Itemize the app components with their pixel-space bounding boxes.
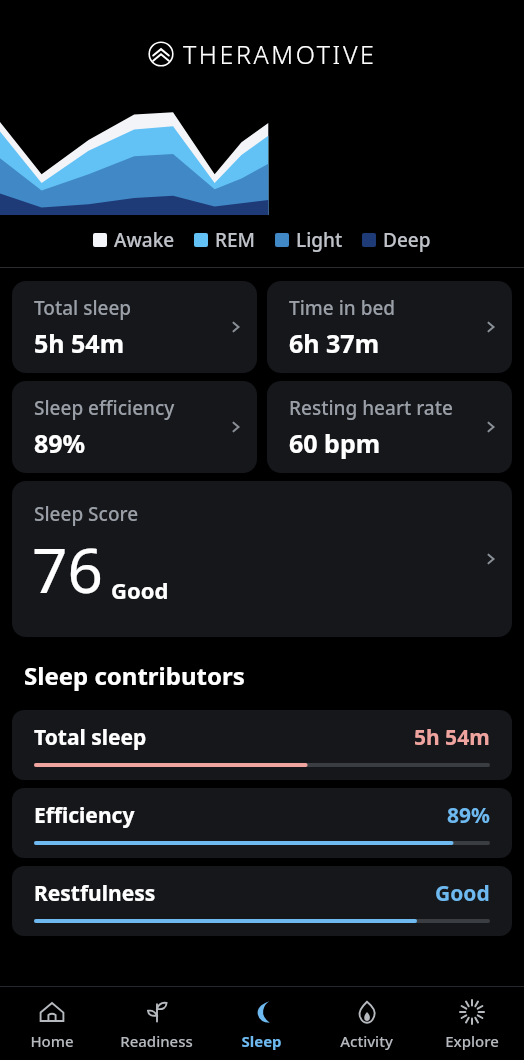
staticText: Time in bed: [289, 295, 396, 321]
staticText: Sleep contributors: [24, 659, 245, 692]
other: Activity: [352, 997, 382, 1027]
button[interactable]: Home: [0, 997, 104, 1051]
other: Explore: [457, 997, 487, 1027]
staticText: Readiness: [120, 1031, 193, 1051]
staticText: Good: [435, 879, 490, 908]
staticText: REM: [215, 227, 256, 253]
staticText: Light: [296, 227, 343, 253]
staticText: 5h 54m: [414, 723, 490, 752]
button[interactable]: Total sleep: [12, 281, 257, 373]
other: Home: [37, 997, 67, 1027]
staticText: Efficiency: [34, 801, 135, 830]
staticText: Home: [30, 1031, 74, 1051]
staticText: 89%: [447, 801, 490, 830]
staticText: 89%: [34, 426, 86, 460]
button[interactable]: Time in bed: [267, 281, 512, 373]
button[interactable]: Sleep Score: [12, 481, 512, 637]
button[interactable]: Sleep: [209, 997, 314, 1051]
staticText: Explore: [445, 1031, 499, 1051]
staticText: Sleep efficiency: [34, 395, 175, 421]
button[interactable]: Total sleep: [12, 710, 512, 780]
staticText: Restfulness: [34, 879, 156, 908]
staticText: Deep: [383, 227, 431, 253]
staticText: 6h 37m: [289, 326, 380, 360]
button[interactable]: Readiness: [104, 997, 209, 1051]
staticText: Good: [111, 575, 169, 605]
staticText: Total sleep: [34, 723, 147, 752]
staticText: 76: [32, 527, 103, 611]
button[interactable]: Explore: [419, 997, 524, 1051]
staticText: Activity: [340, 1031, 393, 1051]
staticText: Resting heart rate: [289, 395, 453, 421]
staticText: 5h 54m: [34, 326, 125, 360]
staticText: Total sleep: [34, 295, 132, 321]
button[interactable]: Resting heart rate: [267, 381, 512, 473]
staticText: 60 bpm: [289, 426, 381, 460]
staticText: THERAMOTIVE: [183, 37, 377, 71]
button[interactable]: Sleep efficiency: [12, 381, 257, 473]
other: Sleep: [247, 997, 277, 1027]
button[interactable]: Restfulness: [12, 866, 512, 936]
staticText: Awake: [114, 227, 175, 253]
button[interactable]: Efficiency: [12, 788, 512, 858]
staticText: Sleep: [241, 1031, 282, 1051]
button[interactable]: Activity: [314, 997, 419, 1051]
other: Readiness: [142, 997, 172, 1027]
staticText: Sleep Score: [34, 501, 139, 527]
